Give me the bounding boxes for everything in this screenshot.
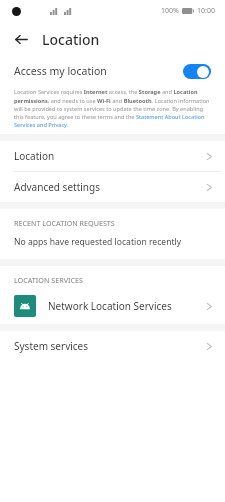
other: Open	[206, 151, 213, 162]
other: Access my location toggle	[183, 64, 211, 79]
staticText: Access my location	[14, 64, 107, 78]
staticText: LOCATION SERVICES	[14, 275, 83, 285]
other: Open	[206, 341, 213, 352]
button[interactable]: Location	[0, 141, 225, 171]
staticText: No apps have requested location recently	[14, 236, 182, 248]
button[interactable]: Advanced settings	[0, 172, 225, 202]
staticText: 10:00	[197, 6, 215, 16]
other: Open	[206, 182, 213, 193]
button[interactable]: System services	[0, 331, 225, 361]
staticText: Location	[42, 30, 100, 49]
staticText: 100%	[161, 6, 179, 16]
staticText: Location Services requires Internet acce…	[14, 88, 211, 128]
staticText: Advanced settings	[14, 180, 100, 194]
staticText: Network Location Services	[48, 299, 172, 313]
button[interactable]: Back	[8, 26, 34, 52]
staticText: Location	[14, 149, 55, 163]
staticText: RECENT LOCATION REQUESTS	[14, 218, 115, 228]
button[interactable]: Access my location	[0, 56, 225, 86]
staticText: System services	[14, 339, 89, 353]
button[interactable]: Network Location Services	[0, 288, 225, 324]
other: Open	[206, 301, 213, 312]
